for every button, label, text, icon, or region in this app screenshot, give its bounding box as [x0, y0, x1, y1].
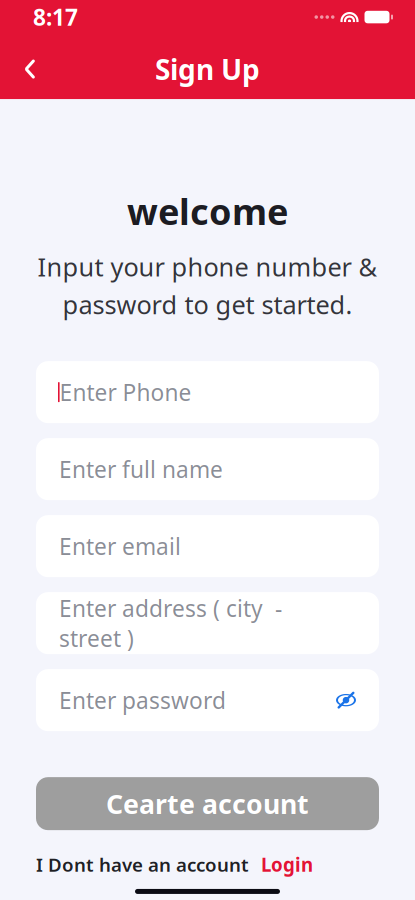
button[interactable]: Enter address ( city - street ) — [36, 592, 379, 654]
staticText: Cearte account — [106, 786, 309, 821]
staticText: Enter password — [59, 685, 226, 715]
button[interactable]: Enter email — [36, 515, 379, 577]
staticText: Login — [261, 852, 313, 877]
staticText: I Dont have an account — [36, 852, 249, 877]
button[interactable]: Back — [8, 47, 52, 91]
button[interactable]: Login — [249, 848, 313, 881]
staticText: Sign Up — [155, 50, 260, 88]
button[interactable]: Cearte account — [36, 777, 379, 830]
staticText: password to get started. — [62, 287, 352, 321]
staticText: Enter Phone — [60, 377, 192, 407]
staticText: welcome — [127, 187, 288, 235]
staticText: Enter email — [59, 531, 181, 561]
staticText: Enter address ( city - street ) — [59, 593, 282, 653]
staticText: Enter full name — [59, 454, 223, 484]
staticText: Input your phone number & — [37, 250, 377, 283]
button[interactable]: Enter full name — [36, 438, 379, 500]
staticText: 8:17 — [33, 2, 78, 32]
button[interactable]: Enter password — [36, 669, 379, 731]
button[interactable]: Enter Phone — [36, 361, 379, 423]
